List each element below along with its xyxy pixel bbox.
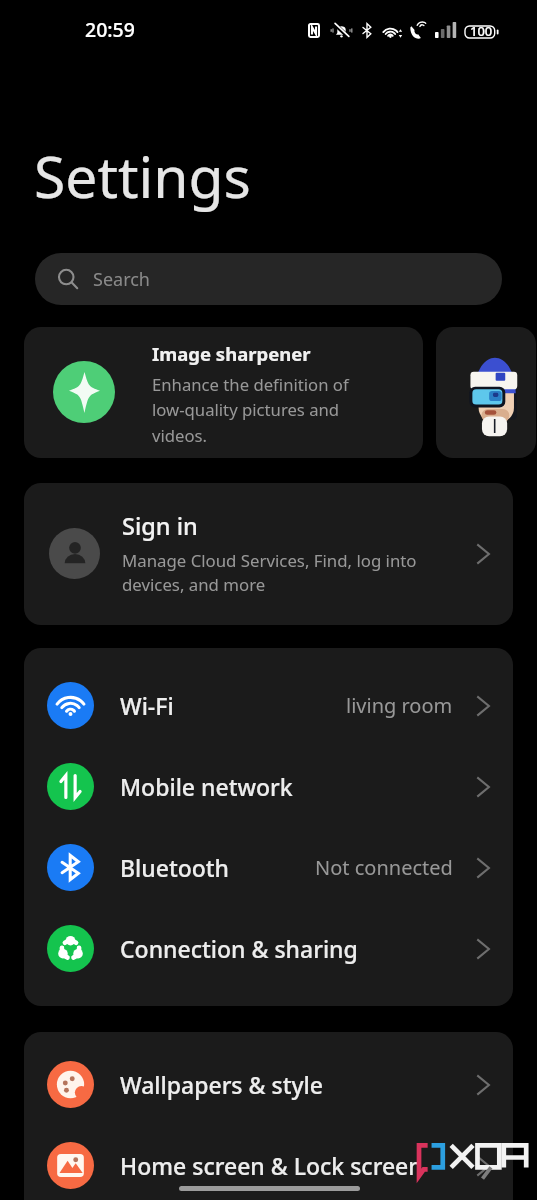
button[interactable]: Connection & sharing bbox=[24, 908, 513, 989]
staticText: 20:59 bbox=[85, 16, 135, 43]
staticText: Sign in bbox=[122, 510, 198, 542]
button[interactable]: Bluetooth bbox=[24, 827, 513, 908]
button[interactable]: Home screen & Lock screen bbox=[24, 1125, 513, 1200]
staticText: Manage Cloud Services, Find, log into de… bbox=[122, 549, 417, 596]
other: Search bbox=[57, 268, 79, 290]
staticText: Bluetooth bbox=[120, 852, 230, 883]
staticText: Wallpapers & style bbox=[120, 1069, 323, 1100]
button[interactable]: Wi-Fi bbox=[24, 665, 513, 746]
button[interactable]: Avatar bbox=[436, 327, 536, 458]
button[interactable]: Image sharpener bbox=[24, 327, 423, 458]
button[interactable]: Search bbox=[35, 253, 502, 305]
staticText: living room bbox=[346, 692, 453, 719]
staticText: Home screen & Lock screen bbox=[120, 1150, 423, 1181]
button[interactable]: Sign in bbox=[24, 483, 513, 625]
staticText: 100 bbox=[470, 22, 493, 40]
button[interactable]: Wallpapers & style bbox=[24, 1044, 513, 1125]
staticText: Not connected bbox=[315, 854, 453, 881]
staticText: Settings bbox=[34, 137, 251, 215]
staticText: Image sharpener bbox=[152, 341, 311, 366]
staticText: Mobile network bbox=[120, 771, 293, 802]
staticText: Search bbox=[93, 267, 150, 292]
button[interactable]: Mobile network bbox=[24, 746, 513, 827]
staticText: Wi-Fi bbox=[120, 690, 174, 721]
staticText: Connection & sharing bbox=[120, 933, 358, 964]
staticText: Enhance the definition of low-quality pi… bbox=[152, 373, 349, 447]
